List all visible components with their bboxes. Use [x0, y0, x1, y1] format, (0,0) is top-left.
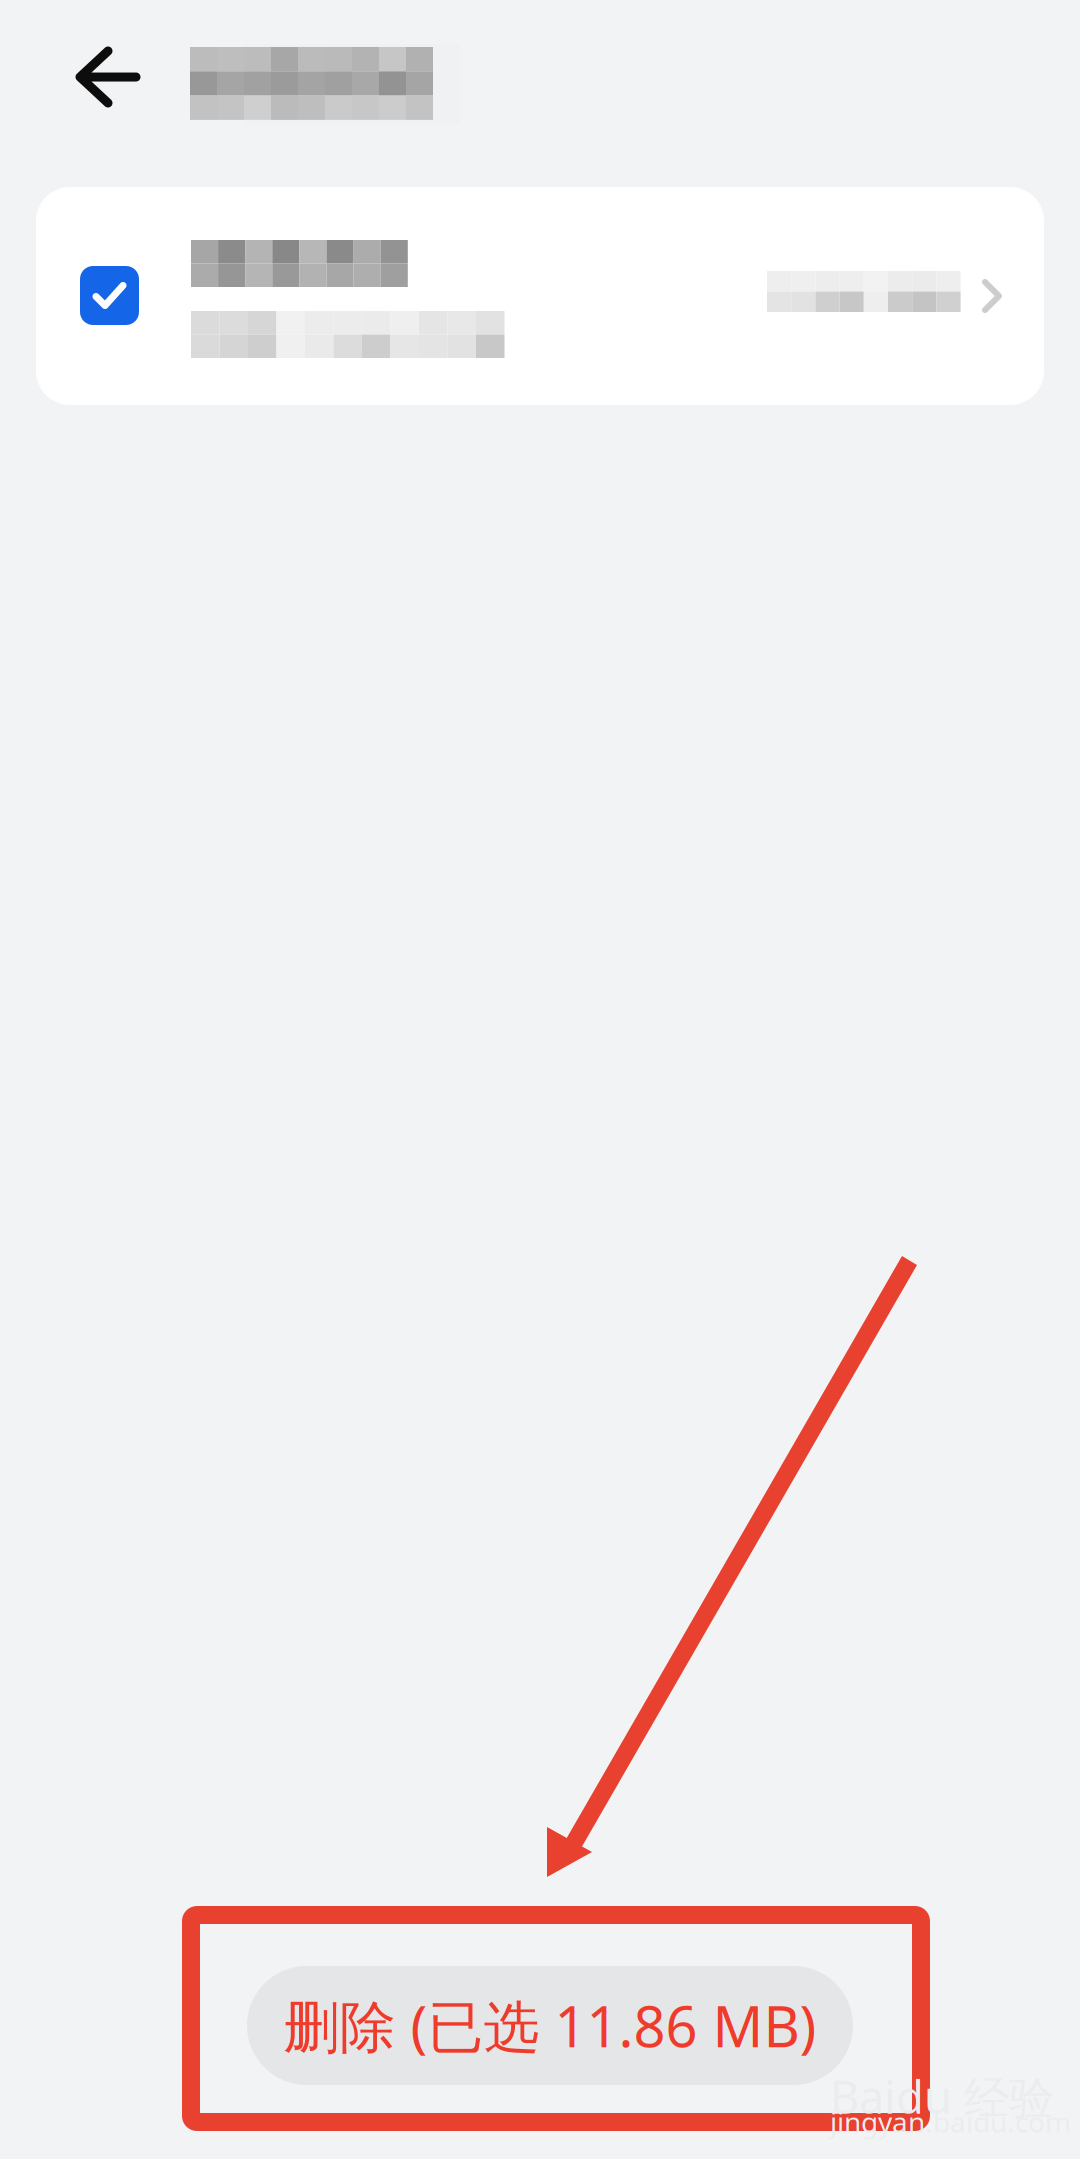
- staticText: jingyan.baidu.com: [830, 2103, 1071, 2140]
- staticText: 删除 (已选 11.86 MB): [283, 1988, 816, 2063]
- staticText: Baidu 经验: [830, 2066, 1054, 2126]
- button[interactable]: App storage detail: [36, 187, 1044, 405]
- button[interactable]: Selected: [58, 244, 161, 347]
- button[interactable]: 删除 (已选 11.86 MB): [247, 1966, 853, 2085]
- button[interactable]: Back: [48, 20, 168, 134]
